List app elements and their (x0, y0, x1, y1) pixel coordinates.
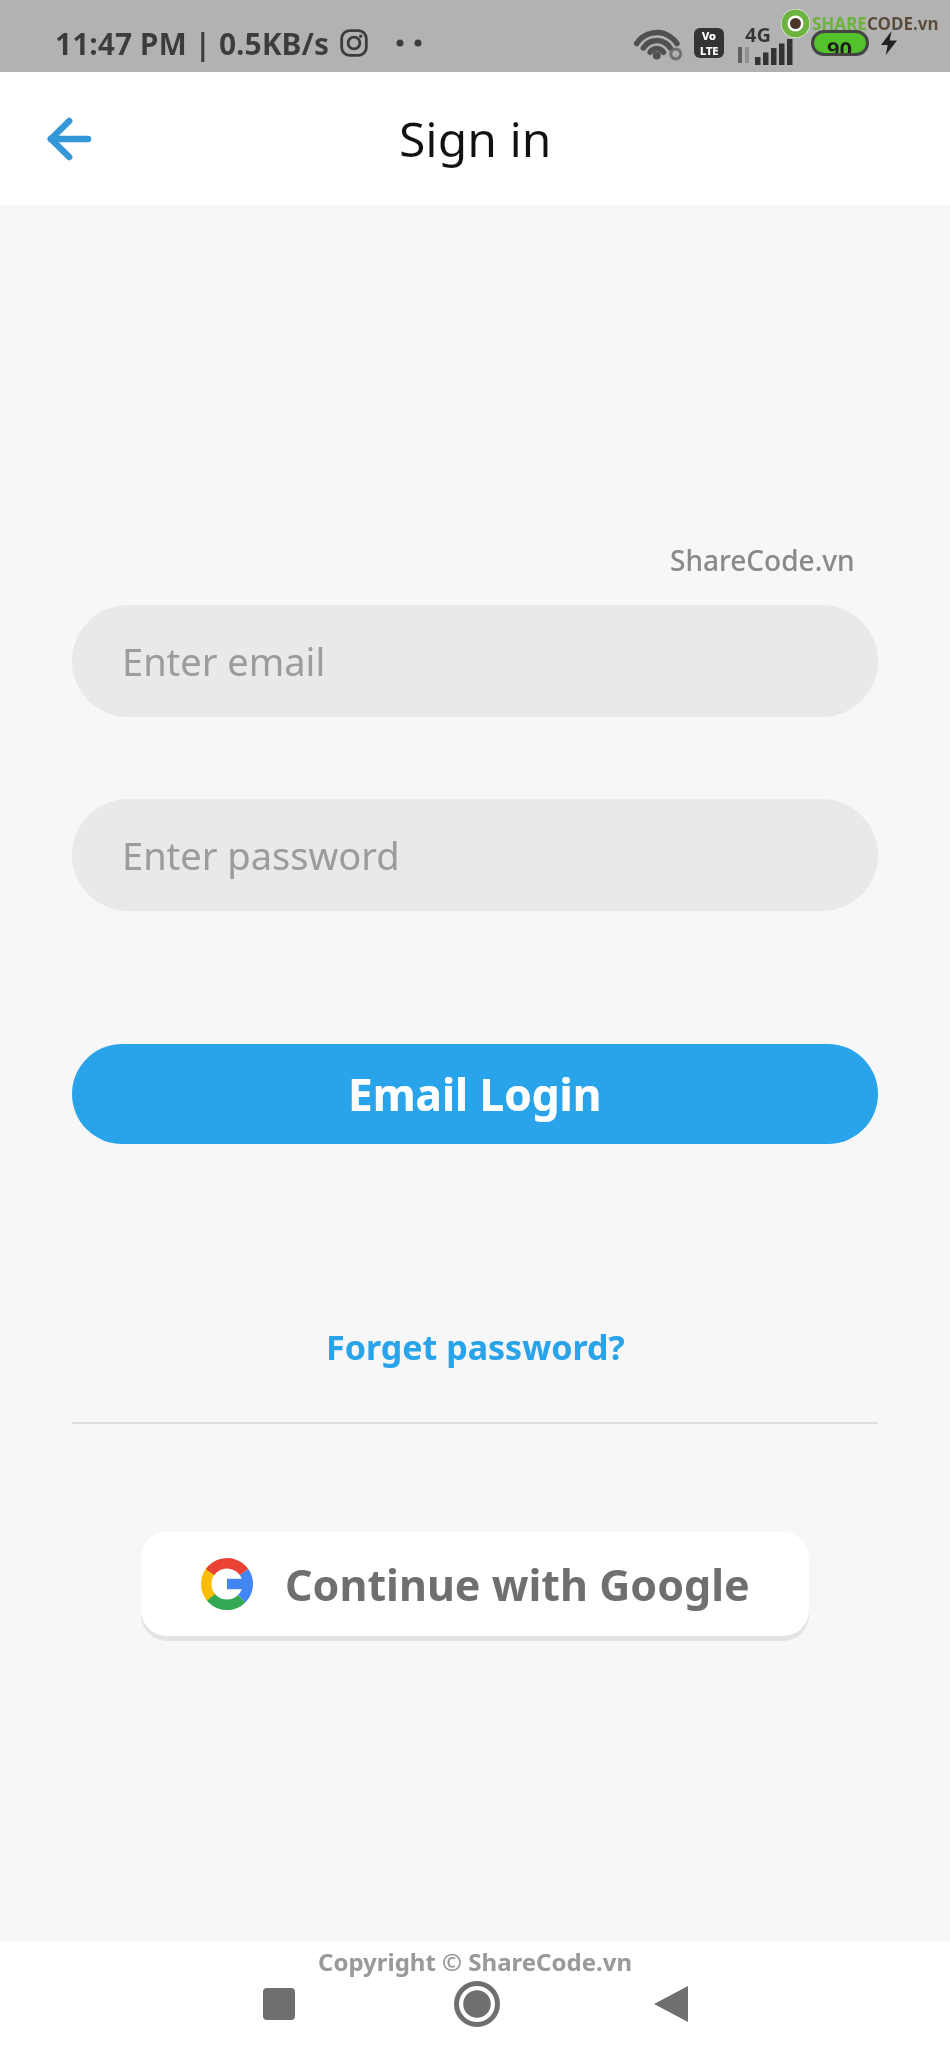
button[interactable]: Email Login (72, 1044, 878, 1144)
staticText: Vo (702, 28, 716, 43)
staticText: SHARE (812, 12, 867, 35)
staticText: 4G (745, 21, 771, 48)
button[interactable]: Continue with Google (141, 1532, 809, 1636)
staticText: Copyright © ShareCode.vn (0, 1945, 950, 1978)
staticText: Email Login (348, 1064, 602, 1124)
button[interactable] (44, 115, 92, 163)
button[interactable]: Enter email (72, 605, 878, 717)
button[interactable]: Forget password? (326, 1324, 625, 1370)
staticText: Forget password? (326, 1324, 625, 1370)
staticText: 90 (827, 33, 853, 53)
button[interactable] (422, 1972, 532, 2036)
staticText: Enter password (122, 829, 400, 881)
button[interactable]: Enter password (72, 799, 878, 911)
staticText: LTE (700, 43, 719, 58)
staticText: Continue with Google (285, 1555, 750, 1614)
button[interactable] (616, 1972, 726, 2036)
staticText: Enter email (122, 635, 326, 687)
staticText: 11:47 PM | 0.5KB/s (55, 23, 330, 64)
staticText: ShareCode.vn (670, 541, 855, 579)
staticText: Sign in (399, 106, 552, 171)
staticText: CODE.vn (867, 12, 939, 35)
button[interactable] (224, 1972, 334, 2036)
